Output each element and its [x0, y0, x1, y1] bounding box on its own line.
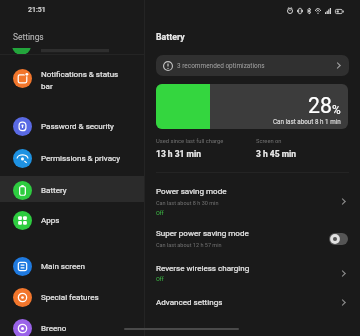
- button[interactable]: 3 recommended optimizations: [156, 55, 349, 76]
- button[interactable]: [0, 207, 144, 235]
- staticText: Special features: [41, 293, 99, 302]
- other: Open: [339, 269, 348, 278]
- staticText: %: [332, 103, 341, 117]
- button[interactable]: [145, 292, 360, 318]
- button[interactable]: [0, 252, 144, 280]
- button[interactable]: [145, 224, 360, 260]
- staticText: Battery: [41, 186, 67, 195]
- staticText: Screen on: [256, 138, 282, 145]
- staticText: Off: [156, 210, 164, 216]
- staticText: Permissions & privacy: [41, 154, 121, 163]
- staticText: Notifications & status bar: [41, 70, 119, 91]
- button[interactable]: [145, 260, 360, 292]
- staticText: Password & security: [41, 122, 114, 131]
- staticText: Main screen: [41, 262, 85, 271]
- staticText: Can last about 12 h 57 min: [156, 242, 222, 248]
- other: Open: [339, 298, 348, 307]
- other: Open: [339, 197, 348, 206]
- button[interactable]: [0, 283, 144, 311]
- staticText: Battery: [156, 32, 185, 42]
- button[interactable]: [145, 182, 360, 224]
- staticText: Can last about 8 h 30 min: [156, 200, 219, 206]
- staticText: 3 h 45 min: [256, 149, 297, 159]
- staticText: Power saving mode: [156, 187, 227, 196]
- staticText: Apps: [41, 216, 60, 225]
- staticText: 28: [308, 93, 332, 118]
- staticText: Super power saving mode: [156, 229, 249, 238]
- button[interactable]: [0, 177, 144, 204]
- staticText: Breeno: [41, 324, 67, 333]
- staticText: 3 recommended optimizations: [177, 62, 265, 70]
- staticText: Settings: [13, 32, 44, 42]
- button[interactable]: [0, 145, 144, 173]
- button[interactable]: [0, 60, 144, 95]
- staticText: Used since last full charge: [156, 138, 224, 145]
- staticText: Off: [156, 276, 164, 282]
- button[interactable]: [0, 113, 144, 141]
- button[interactable]: Super power saving mode toggle: [329, 233, 348, 245]
- staticText: Reverse wireless charging: [156, 264, 250, 273]
- staticText: 13 h 31 min: [156, 149, 201, 159]
- staticText: Can last about 8 h 1 min: [273, 118, 341, 125]
- other: Open: [334, 61, 343, 70]
- staticText: 21:51: [28, 6, 46, 14]
- staticText: Advanced settings: [156, 298, 223, 307]
- button[interactable]: [0, 314, 144, 336]
